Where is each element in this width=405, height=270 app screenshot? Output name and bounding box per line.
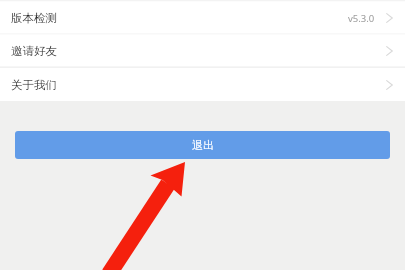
- staticText: v5.3.0: [348, 12, 375, 25]
- button[interactable]: 关于我们: [0, 68, 405, 102]
- button[interactable]: 版本检测: [0, 1, 405, 35]
- staticText: 版本检测: [11, 11, 57, 25]
- staticText: 退出: [192, 138, 214, 152]
- button[interactable]: 邀请好友: [0, 34, 405, 68]
- button[interactable]: 退出: [15, 131, 390, 159]
- staticText: 邀请好友: [11, 44, 57, 58]
- staticText: 关于我们: [11, 78, 57, 92]
